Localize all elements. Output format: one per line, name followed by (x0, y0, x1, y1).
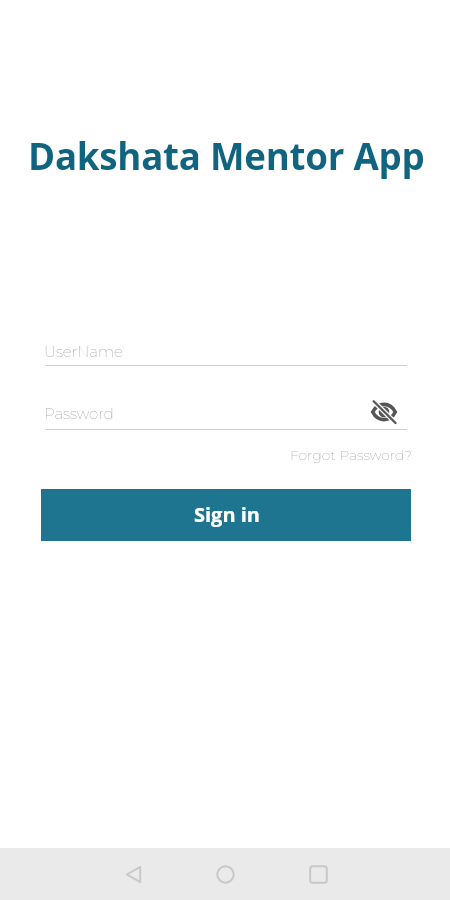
staticText: Password (44, 404, 114, 422)
button[interactable]: Forgot Password? (290, 446, 413, 463)
staticText: Dakshata Mentor App (28, 131, 425, 181)
button[interactable]: Home (201, 850, 249, 898)
button[interactable]: Show password (369, 397, 398, 426)
button[interactable]: Back (110, 850, 158, 898)
button[interactable]: Recent apps (294, 850, 342, 898)
staticText: UserName (44, 342, 123, 360)
staticText: Sign in (194, 501, 261, 528)
button[interactable]: Sign in (41, 489, 411, 541)
